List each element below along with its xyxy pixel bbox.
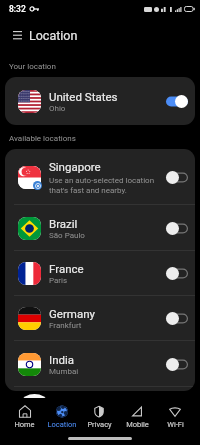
button[interactable]: India bbox=[5, 341, 195, 387]
button[interactable]: United States bbox=[5, 77, 195, 125]
button[interactable]: Germany bbox=[5, 296, 195, 341]
staticText: Location bbox=[29, 28, 78, 43]
staticText: France bbox=[49, 262, 84, 275]
staticText: India bbox=[49, 353, 75, 366]
button[interactable]: Privacy bbox=[80, 402, 118, 432]
staticText: Brazil bbox=[49, 217, 78, 230]
button[interactable]: Toggle bbox=[166, 222, 188, 235]
staticText: Your location bbox=[9, 62, 56, 71]
staticText: Mobile bbox=[126, 420, 149, 429]
staticText: United States bbox=[49, 90, 118, 103]
staticText: São Paulo bbox=[49, 231, 85, 240]
staticText: Singapore bbox=[49, 160, 101, 173]
button[interactable]: Toggle bbox=[166, 171, 188, 184]
staticText: Paris bbox=[49, 276, 68, 285]
staticText: Germany bbox=[49, 307, 95, 320]
button[interactable]: Toggle bbox=[166, 358, 188, 371]
button[interactable]: Location bbox=[43, 402, 80, 432]
button[interactable]: Home bbox=[6, 402, 43, 432]
staticText: Home bbox=[14, 420, 35, 429]
button[interactable]: Toggle bbox=[166, 267, 188, 280]
staticText: Mumbai bbox=[49, 367, 79, 376]
staticText: Privacy bbox=[87, 420, 112, 429]
button[interactable]: Menu bbox=[0, 18, 200, 52]
button[interactable]: Wi-Fi bbox=[156, 402, 194, 432]
staticText: Location bbox=[47, 420, 77, 429]
staticText: Wi-Fi bbox=[167, 420, 184, 429]
staticText: Use an auto-selected location that's fas… bbox=[49, 176, 155, 194]
button[interactable]: Brazil bbox=[5, 205, 195, 251]
staticText: Ohio bbox=[49, 104, 66, 113]
button[interactable]: Toggle bbox=[166, 95, 188, 108]
button[interactable]: France bbox=[5, 251, 195, 296]
button[interactable]: Menu bbox=[7, 25, 27, 45]
button[interactable]: Toggle bbox=[166, 312, 188, 325]
staticText: Available locations bbox=[9, 134, 76, 143]
staticText: Frankfurt bbox=[49, 321, 82, 330]
staticText: 8:32 bbox=[9, 4, 26, 14]
button[interactable]: Mobile bbox=[118, 402, 156, 432]
button[interactable]: Singapore bbox=[5, 149, 195, 205]
